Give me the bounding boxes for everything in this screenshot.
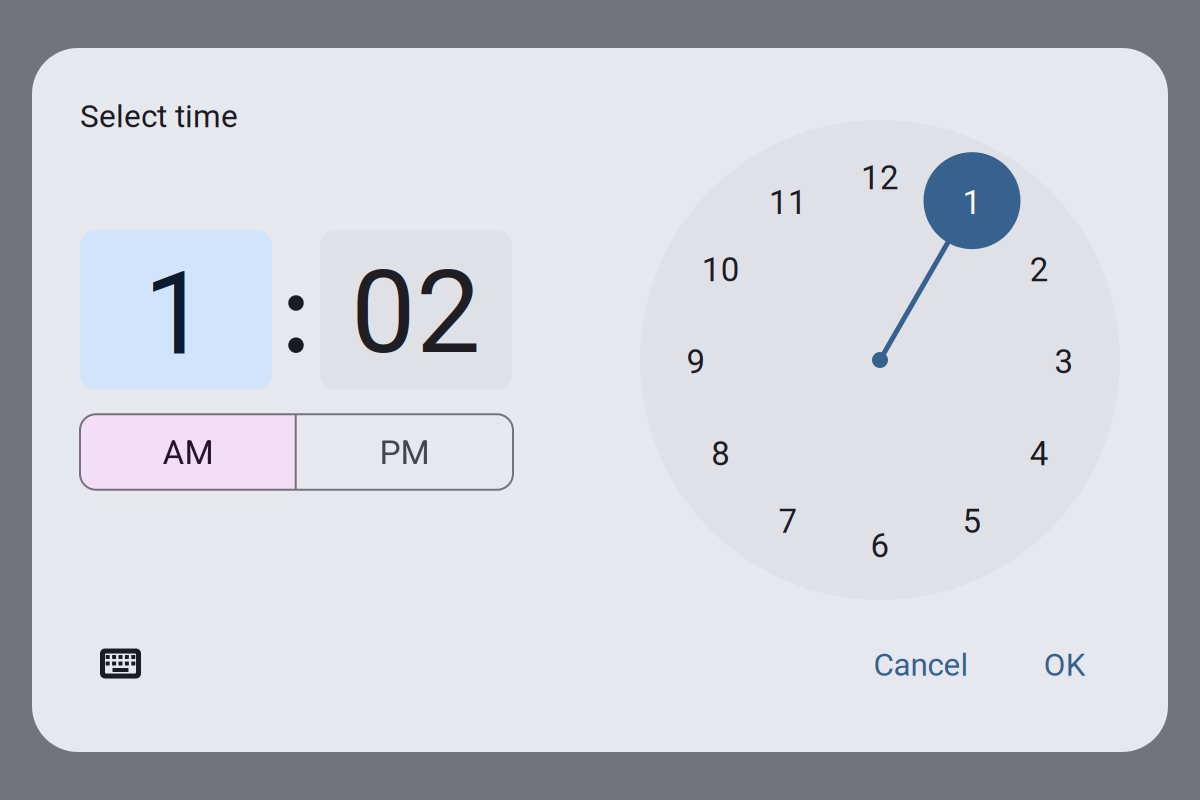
- staticText: 5: [962, 502, 981, 541]
- staticText: Select time: [80, 98, 238, 135]
- staticText: 1: [143, 247, 208, 381]
- staticText: Cancel: [874, 647, 969, 683]
- staticText: OK: [1044, 647, 1086, 683]
- staticText: 9: [686, 343, 705, 381]
- staticText: 1: [962, 183, 981, 222]
- button[interactable]: AM: [80, 414, 296, 490]
- staticText: 10: [702, 251, 740, 289]
- button[interactable]: 02: [320, 230, 512, 390]
- staticText: AM: [162, 433, 213, 473]
- staticText: 02: [351, 245, 481, 380]
- button[interactable]: Switch to text input: [100, 648, 141, 678]
- button[interactable]: 1: [80, 230, 272, 390]
- staticText: 3: [1054, 343, 1073, 381]
- button[interactable]: OK: [1044, 647, 1086, 683]
- staticText: PM: [379, 433, 429, 473]
- button[interactable]: PM: [296, 414, 513, 490]
- staticText: 2: [1030, 251, 1049, 289]
- button[interactable]: Cancel: [874, 647, 969, 683]
- staticText: 12: [861, 159, 899, 197]
- staticText: 7: [778, 502, 797, 541]
- staticText: 6: [870, 527, 889, 565]
- staticText: 8: [711, 435, 730, 473]
- staticText: 4: [1030, 435, 1049, 473]
- staticText: 11: [769, 183, 807, 222]
